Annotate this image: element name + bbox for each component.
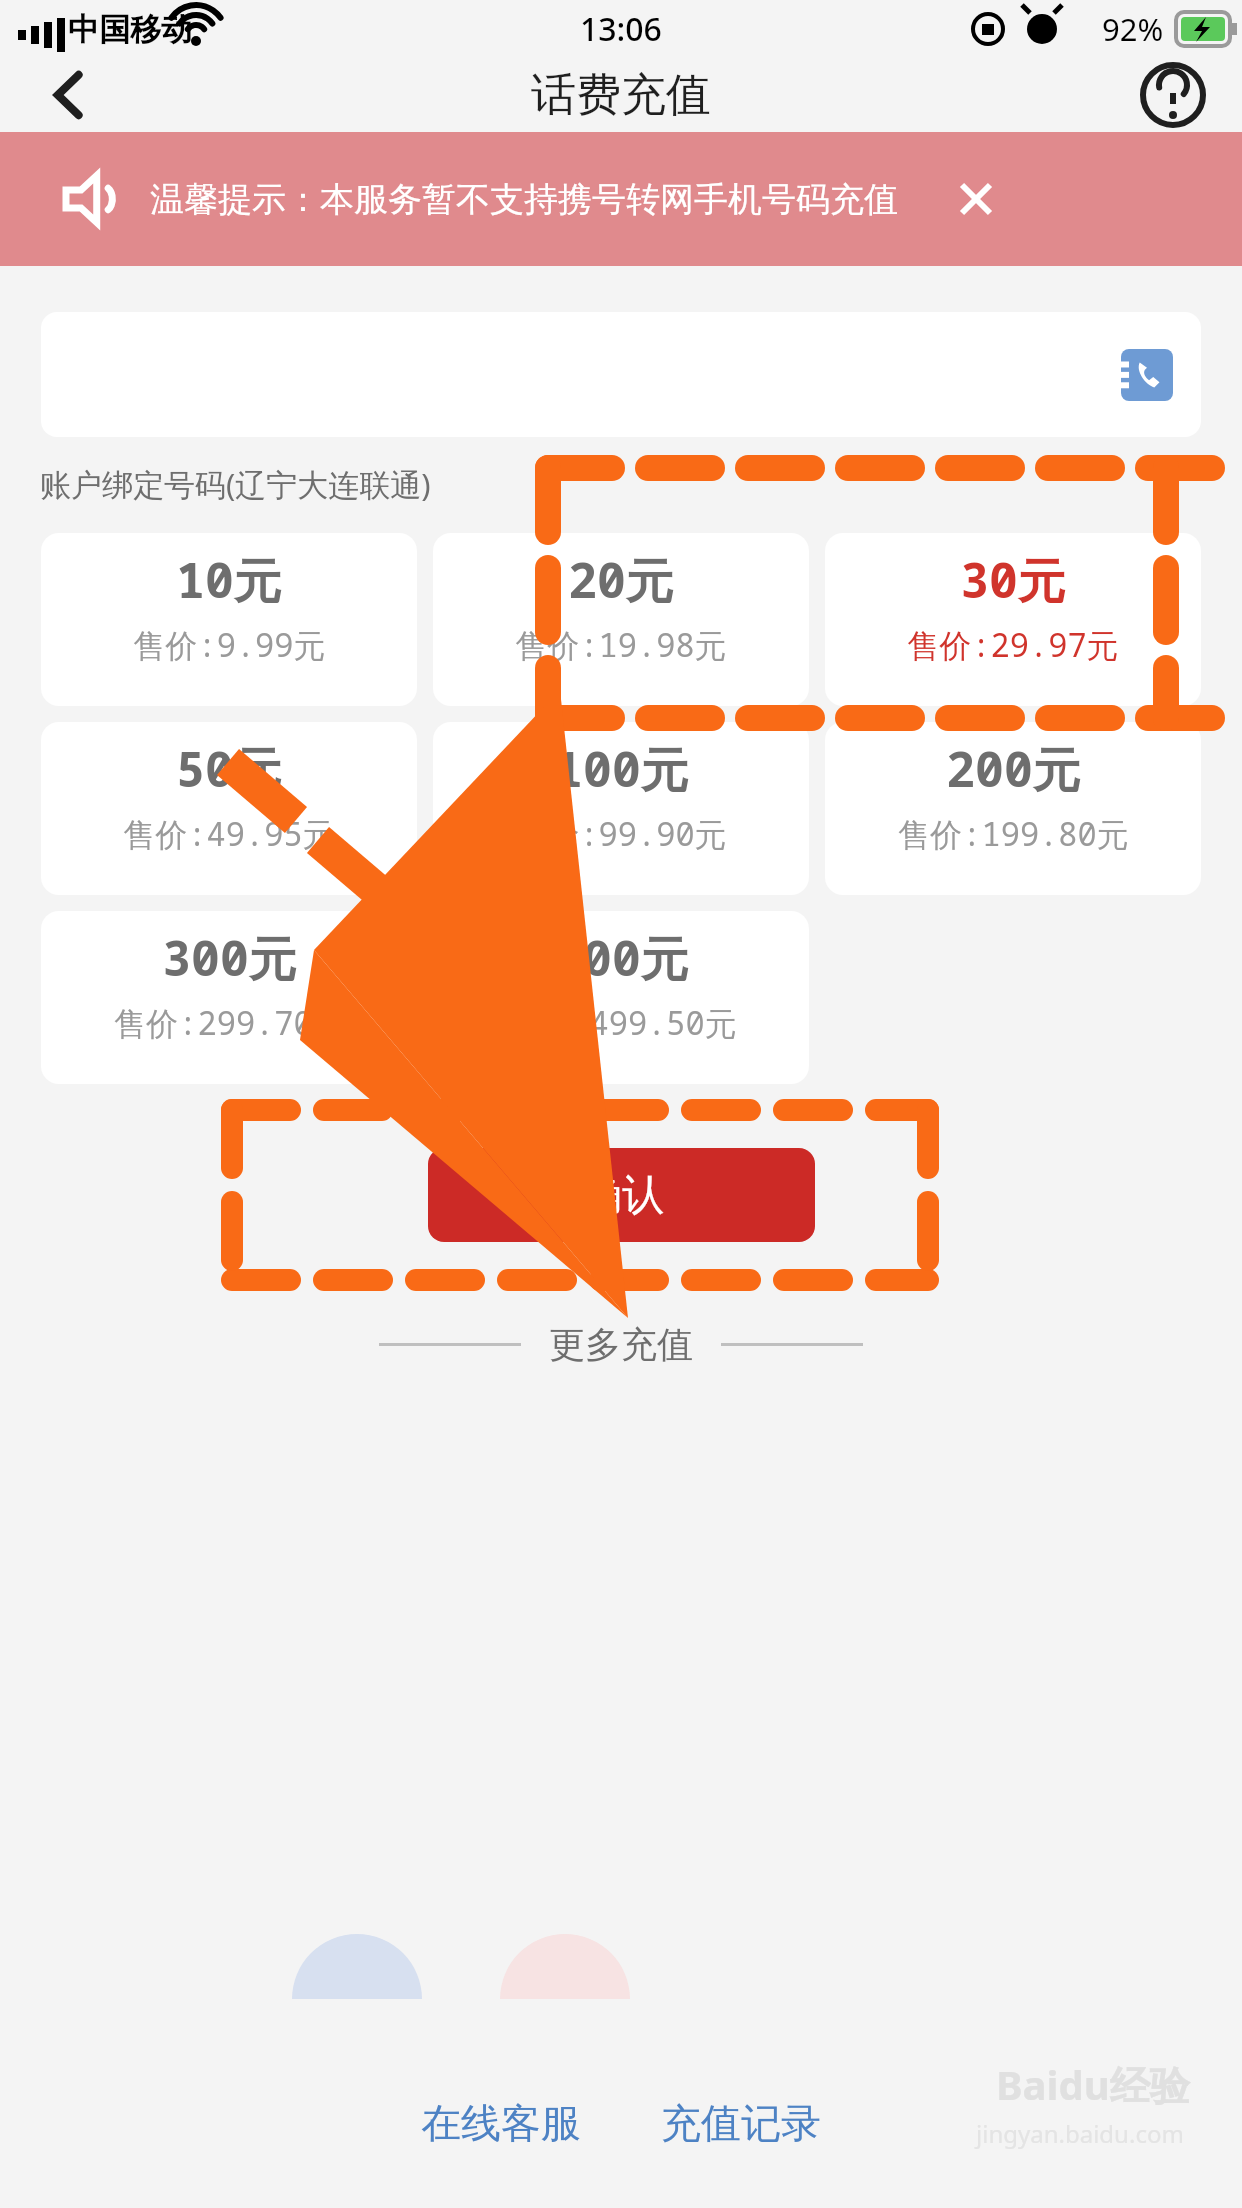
button[interactable]: 30元 [825,533,1201,706]
staticText: 售价:299.70元 [114,1001,345,1045]
staticText: 100元 [554,736,689,802]
button[interactable]: 500元 [433,911,809,1084]
staticText: jingyan.baidu.com [976,2117,1184,2150]
staticText: 话费充值 [531,67,711,124]
staticText: Baidu经验 [996,2057,1190,2112]
button[interactable]: Close [946,169,1006,229]
button[interactable]: 在线客服 [381,2098,621,2148]
staticText: 10元 [176,547,282,613]
staticText: 售价:9.99元 [133,623,326,667]
button[interactable]: Help [1138,60,1208,130]
staticText: 13:06 [580,7,662,51]
staticText: 92% [1102,8,1164,50]
staticText: 售价:499.50元 [506,1001,737,1045]
staticText: 确认 [580,1169,664,1222]
button[interactable]: 50元 [41,722,417,895]
staticText: 中国移动 [68,10,192,49]
button[interactable]: 10元 [41,533,417,706]
staticText: 300元 [162,925,297,991]
button[interactable]: 充值记录 [621,2098,861,2148]
button[interactable]: 20元 [433,533,809,706]
staticText: 售价:199.80元 [898,812,1129,856]
button[interactable]: 更多充值 [549,1322,693,1367]
button[interactable]: 100元 [433,722,809,895]
staticText: 温馨提示：本服务暂不支持携号转网手机号码充值 [150,178,1112,221]
staticText: 30元 [960,547,1066,613]
staticText: 20元 [568,547,674,613]
staticText: 售价:19.98元 [515,623,727,667]
button[interactable]: 确认 [428,1148,815,1242]
button[interactable]: Contacts [41,312,1201,437]
staticText: 200元 [946,736,1081,802]
staticText: 500元 [554,925,689,991]
button[interactable]: Back [34,59,106,131]
staticText: 售价:49.95元 [123,812,335,856]
staticText: 售价:29.97元 [907,623,1119,667]
button[interactable]: Contacts [1121,349,1173,401]
staticText: 售价:99.90元 [515,812,727,856]
button[interactable]: 300元 [41,911,417,1084]
button[interactable]: 200元 [825,722,1201,895]
staticText: 账户绑定号码(辽宁大连联通) [40,463,431,505]
staticText: 50元 [176,736,282,802]
